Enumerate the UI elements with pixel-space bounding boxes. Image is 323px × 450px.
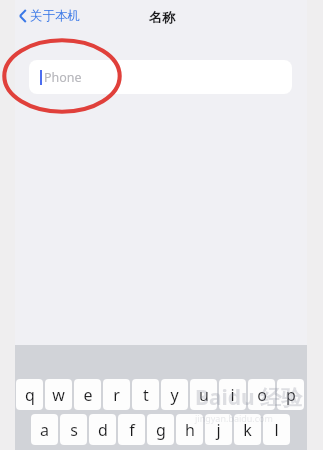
staticText: jingyan.baidu.com bbox=[195, 412, 273, 424]
button[interactable]: Phone bbox=[29, 60, 292, 94]
staticText: 名称 bbox=[149, 9, 175, 25]
staticText: p bbox=[286, 384, 296, 406]
button[interactable]: q bbox=[16, 379, 43, 410]
staticText: e bbox=[83, 384, 93, 406]
button[interactable]: u bbox=[190, 379, 217, 410]
staticText: s bbox=[70, 419, 78, 441]
button[interactable]: p bbox=[277, 379, 304, 410]
staticText: r bbox=[113, 384, 120, 406]
button[interactable]: d bbox=[89, 414, 116, 445]
staticText: q bbox=[25, 384, 35, 406]
button[interactable]: y bbox=[161, 379, 188, 410]
button[interactable]: k bbox=[234, 414, 261, 445]
button[interactable]: h bbox=[176, 414, 203, 445]
button[interactable]: r bbox=[103, 379, 130, 410]
staticText: t bbox=[143, 384, 149, 406]
button[interactable]: j bbox=[205, 414, 232, 445]
staticText: 关于本机 bbox=[30, 8, 80, 24]
staticText: i bbox=[230, 384, 235, 406]
staticText: y bbox=[170, 384, 179, 406]
staticText: f bbox=[129, 419, 135, 441]
button[interactable]: s bbox=[60, 414, 87, 445]
button[interactable]: Back bbox=[17, 5, 82, 27]
button[interactable]: o bbox=[248, 379, 275, 410]
staticText: o bbox=[257, 384, 267, 406]
staticText: j bbox=[216, 419, 221, 441]
staticText: a bbox=[40, 419, 49, 441]
staticText: h bbox=[185, 419, 195, 441]
staticText: l bbox=[274, 419, 279, 441]
button[interactable]: i bbox=[219, 379, 246, 410]
button[interactable]: l bbox=[263, 414, 290, 445]
other: Back bbox=[19, 9, 27, 23]
staticText: Baidu 经验 bbox=[195, 383, 303, 412]
button[interactable]: a bbox=[31, 414, 58, 445]
button[interactable]: e bbox=[74, 379, 101, 410]
staticText: w bbox=[52, 384, 65, 406]
button[interactable]: w bbox=[45, 379, 72, 410]
staticText: Phone bbox=[44, 69, 82, 86]
button[interactable]: g bbox=[147, 414, 174, 445]
button[interactable]: t bbox=[132, 379, 159, 410]
staticText: g bbox=[156, 419, 166, 441]
staticText: u bbox=[199, 384, 209, 406]
staticText: d bbox=[98, 419, 108, 441]
staticText: k bbox=[243, 419, 252, 441]
button[interactable]: f bbox=[118, 414, 145, 445]
